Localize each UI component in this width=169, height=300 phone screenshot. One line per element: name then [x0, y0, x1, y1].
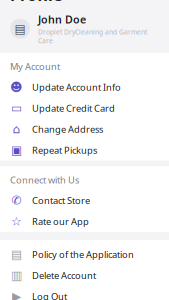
- button[interactable]: ☻: [0, 77, 169, 98]
- staticText: Contact Store: [32, 194, 90, 207]
- staticText: John Doe: [38, 12, 86, 26]
- staticText: ☻: [10, 80, 23, 94]
- staticText: ▶: [12, 290, 21, 300]
- staticText: Droplet DryCleaning and Garment Care: [38, 27, 147, 45]
- button[interactable]: ▥: [0, 265, 169, 286]
- staticText: Policy of the Application: [32, 248, 134, 261]
- staticText: Rate our App: [32, 215, 89, 228]
- staticText: Repeat Pickups: [32, 144, 97, 156]
- staticText: ☆: [11, 215, 22, 228]
- staticText: Log Out: [32, 290, 67, 300]
- staticText: ▤: [14, 22, 25, 35]
- staticText: ▭: [11, 101, 22, 115]
- staticText: Profile: [10, 0, 63, 5]
- staticText: Change Address: [32, 123, 103, 135]
- button[interactable]: ▭: [0, 98, 169, 119]
- button[interactable]: ⌂: [0, 119, 169, 140]
- staticText: Update Credit Card: [32, 102, 115, 114]
- staticText: Update Account Info: [32, 81, 121, 93]
- staticText: ✆: [11, 194, 21, 207]
- button[interactable]: ▶: [0, 286, 169, 300]
- button[interactable]: ▤: [0, 244, 169, 265]
- button[interactable]: ✆: [0, 190, 169, 211]
- staticText: ▥: [11, 269, 22, 282]
- staticText: My Account: [10, 60, 60, 73]
- staticText: ▤: [11, 248, 22, 261]
- staticText: ⌂: [12, 122, 20, 136]
- button[interactable]: ▣: [0, 140, 169, 161]
- staticText: Connect with Us: [10, 174, 79, 186]
- button[interactable]: ▤: [0, 5, 169, 53]
- button[interactable]: ☆: [0, 211, 169, 232]
- staticText: ▣: [11, 143, 22, 157]
- staticText: Delete Account: [32, 269, 96, 282]
